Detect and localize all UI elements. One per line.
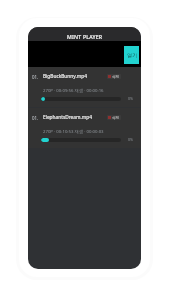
staticText: 270P · 00:10:53 재생 · 00:00:03	[43, 128, 104, 134]
staticText: 01.	[32, 115, 39, 121]
staticText: 270P · 00:09:56 재생 · 00:00:16	[43, 87, 104, 93]
staticText: BigBuckBunny.mp4	[43, 73, 87, 80]
button[interactable]: 01.	[28, 108, 141, 148]
staticText: 01.	[32, 74, 39, 80]
staticText: 열기	[127, 52, 137, 58]
button[interactable]: Open file	[124, 46, 139, 64]
staticText: 삭제	[112, 75, 119, 79]
button[interactable]: 삭제	[107, 74, 121, 79]
staticText: 삭제	[112, 116, 119, 120]
staticText: ElephantsDream.mp4	[43, 114, 92, 121]
staticText: 0%	[128, 96, 134, 101]
staticText: MINT PLAYER	[67, 33, 103, 40]
button[interactable]: 삭제	[107, 115, 121, 120]
staticText: 0%	[128, 137, 134, 142]
button[interactable]: 01.	[28, 67, 141, 107]
